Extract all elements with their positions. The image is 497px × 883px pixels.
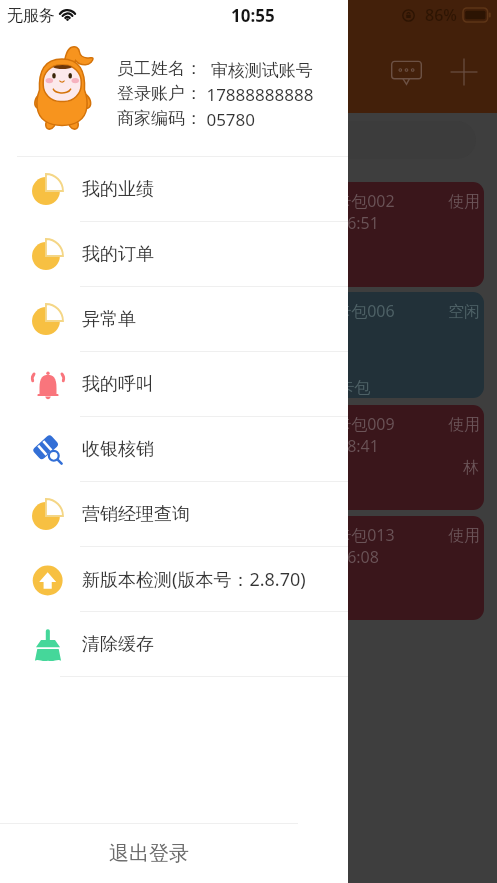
staticText: 登录账户：: [117, 83, 202, 104]
staticText: 空闲: [448, 302, 480, 322]
staticText: 我的业绩: [82, 178, 154, 201]
staticText: 商家编码：: [117, 108, 202, 129]
button[interactable]: 我的业绩: [0, 157, 348, 221]
button[interactable]: 收银核销: [0, 417, 348, 481]
button[interactable]: 新版本检测(版本号：2.8.70): [0, 547, 348, 611]
staticText: 10:55: [231, 4, 275, 27]
staticText: 我的呼叫: [82, 373, 154, 396]
button[interactable]: 异常单: [0, 287, 348, 351]
staticText: 16:08: [338, 546, 379, 568]
staticText: 异常单: [82, 308, 136, 331]
staticText: 我的订单: [82, 243, 154, 266]
button[interactable]: 1号卡包002: [13, 182, 484, 287]
button[interactable]: 退出登录: [0, 824, 298, 883]
staticText: 员工姓名：: [117, 58, 202, 79]
button[interactable]: 清除缓存: [0, 612, 348, 676]
staticText: 2号卡包006: [310, 300, 395, 322]
staticText: 退出登录: [109, 841, 189, 866]
staticText: 17888888888: [202, 83, 314, 106]
button[interactable]: 我的订单: [0, 222, 348, 286]
staticText: 使用: [448, 192, 480, 212]
staticText: 2号卡包009: [310, 413, 395, 435]
staticText: 05780: [202, 108, 256, 131]
staticText: 林: [463, 458, 479, 478]
button[interactable]: 2号卡包009: [13, 405, 484, 510]
staticText: 审核测试账号: [202, 58, 313, 81]
button[interactable]: 3号卡包013: [13, 516, 484, 620]
button[interactable]: 营销经理查询: [0, 482, 348, 546]
staticText: 86%: [425, 4, 457, 26]
staticText: 2号卡包: [313, 376, 371, 398]
staticText: 使用: [448, 415, 480, 435]
staticText: 1号卡包002: [310, 190, 395, 212]
staticText: 16:51: [338, 212, 379, 234]
staticText: 收银核销: [82, 438, 154, 461]
staticText: 无服务: [7, 6, 55, 26]
button[interactable]: 我的呼叫: [0, 352, 348, 416]
staticText: 清除缓存: [82, 633, 154, 656]
button[interactable]: 请输入卡座名称: [18, 121, 476, 159]
staticText: 使用: [448, 526, 480, 546]
staticText: 18:41: [338, 435, 379, 457]
button[interactable]: 2号卡包006: [13, 292, 484, 398]
button[interactable]: Add: [443, 51, 485, 93]
staticText: 3号卡包013: [310, 524, 395, 546]
staticText: 新版本检测(版本号：2.8.70): [82, 567, 306, 592]
staticText: 营销经理查询: [82, 503, 190, 526]
button[interactable]: Messages: [385, 51, 427, 93]
